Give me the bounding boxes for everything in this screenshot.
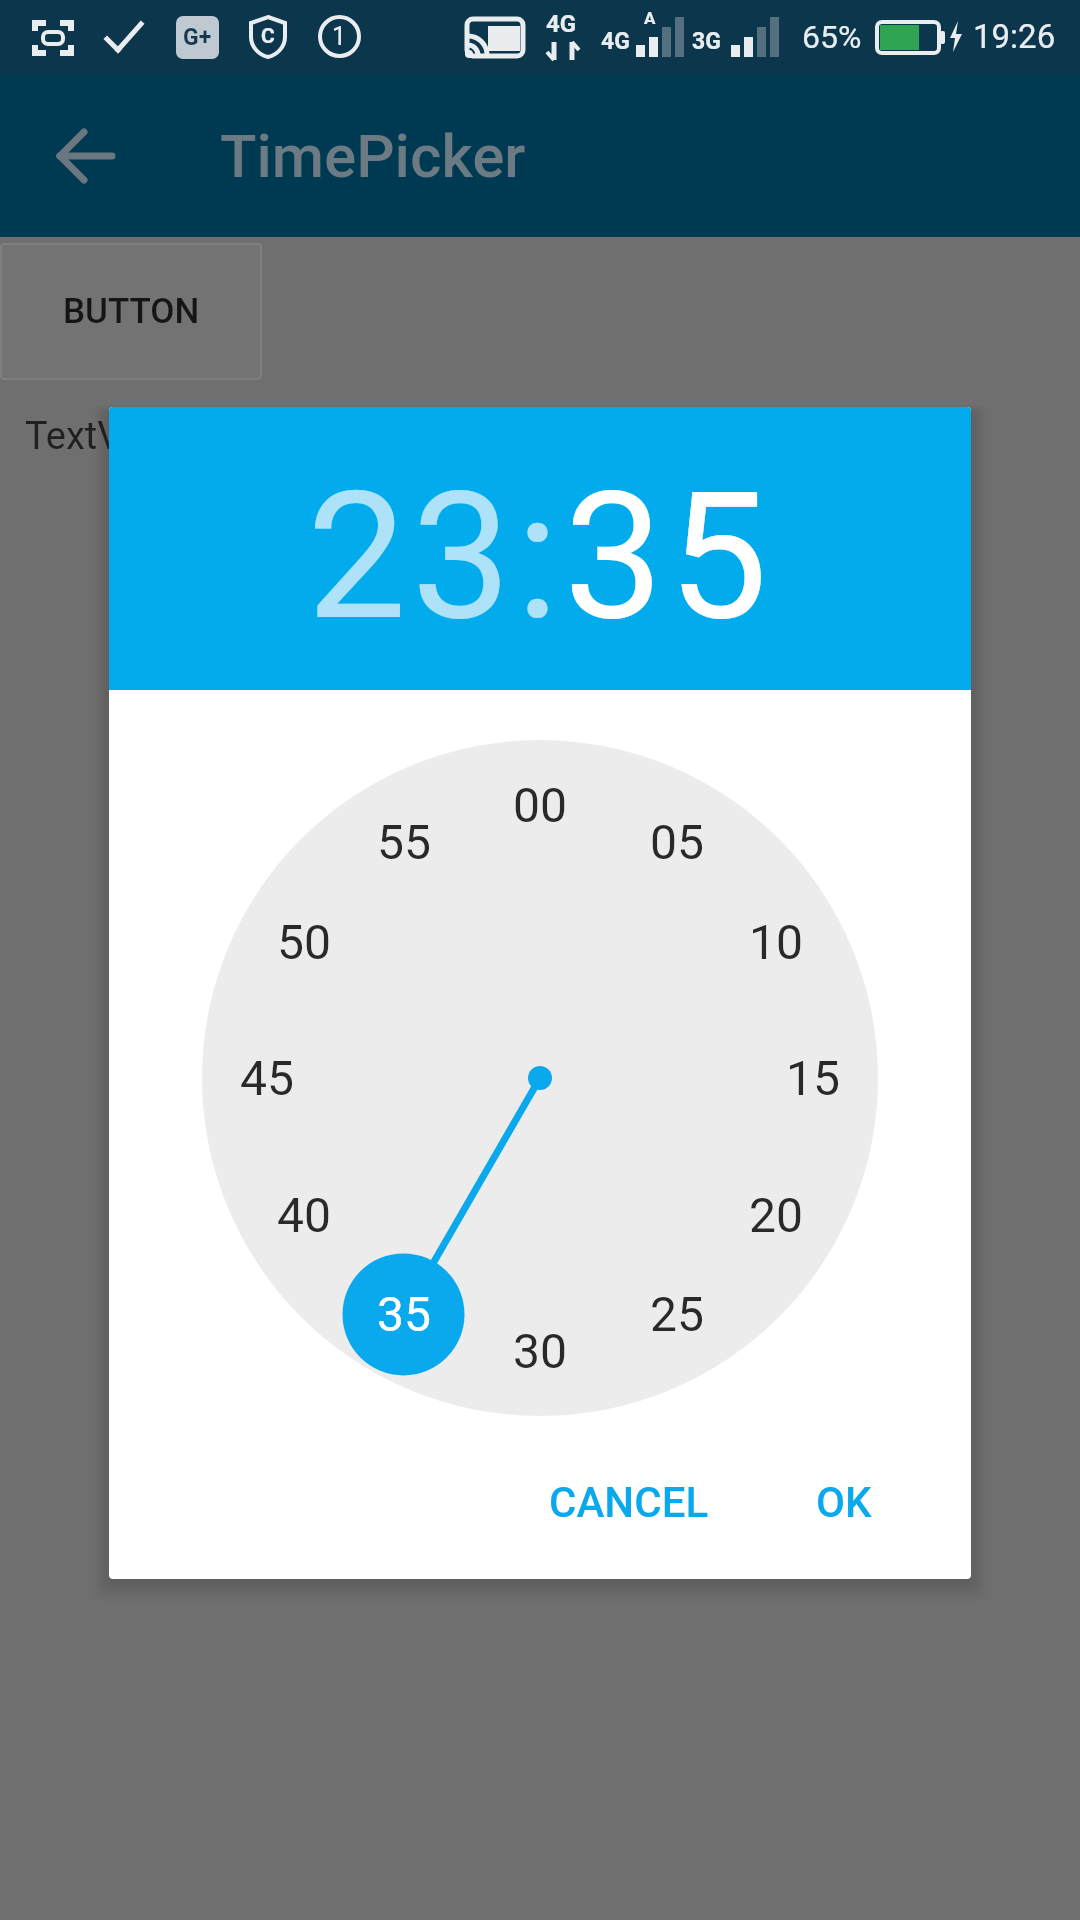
staticText: 10 — [749, 914, 803, 970]
staticText: BUTTON — [63, 291, 200, 332]
staticText: 30 — [513, 1323, 567, 1379]
staticText: 45 — [240, 1050, 294, 1106]
staticText: A — [644, 8, 656, 28]
staticText: 4G — [601, 28, 630, 55]
staticText: 23:35 — [307, 453, 773, 660]
staticText: 65% — [802, 18, 862, 56]
staticText: 50 — [277, 914, 331, 970]
staticText: 35 — [377, 1286, 431, 1342]
staticText: C — [261, 24, 275, 49]
staticText: 40 — [277, 1187, 331, 1243]
button[interactable]: OK — [774, 1432, 914, 1572]
staticText: 15 — [786, 1050, 840, 1106]
button[interactable]: BUTTON — [0, 243, 262, 380]
staticText: TextView — [25, 414, 180, 459]
staticText: 05 — [650, 814, 704, 870]
button[interactable] — [58, 128, 114, 184]
staticText: 25 — [650, 1286, 704, 1342]
staticText: 3G — [692, 28, 721, 55]
staticText: 19:26 — [973, 17, 1056, 56]
staticText: CANCEL — [549, 1478, 709, 1527]
staticText: G+ — [183, 24, 212, 51]
staticText: 4G — [546, 10, 577, 38]
staticText: OK — [816, 1478, 872, 1527]
staticText: 1 — [332, 22, 347, 51]
button[interactable]: CANCEL — [514, 1432, 744, 1572]
staticText: 20 — [749, 1187, 803, 1243]
staticText: 55 — [377, 814, 431, 870]
staticText: TimePicker — [220, 121, 526, 191]
staticText: 00 — [513, 777, 567, 833]
